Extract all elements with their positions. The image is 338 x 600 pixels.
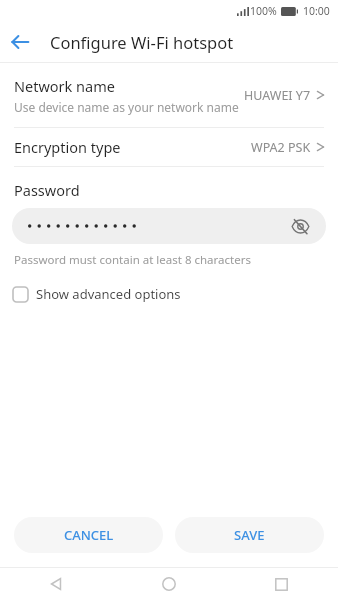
staticText: Network name [14,76,115,96]
staticText: SAVE [234,526,265,544]
staticText: Password [14,180,80,200]
button[interactable]: Network name [0,63,338,127]
button[interactable]: Show password [286,212,314,240]
button[interactable]: CANCEL [14,517,163,553]
staticText: WPA2 PSK [251,139,311,156]
staticText: 100% [250,4,277,18]
staticText: Configure Wi-Fi hotspot [50,31,234,53]
staticText: Encryption type [14,137,251,157]
staticText: Password must contain at least 8 charact… [14,252,251,268]
button[interactable]: SAVE [175,517,324,553]
button[interactable]: Home [112,568,225,600]
button[interactable]: Show advanced options [12,281,189,307]
staticText: HUAWEI Y7 [244,87,311,104]
button[interactable]: Encryption type [0,128,338,166]
button[interactable]: Back [0,568,112,600]
staticText: 10:00 [303,4,330,18]
staticText: CANCEL [64,526,114,544]
button[interactable]: Back [0,22,40,62]
button[interactable]: Recent apps [225,568,338,600]
staticText: Use device name as your network name [14,99,239,115]
staticText: Show advanced options [36,285,181,303]
button[interactable]: Show password [12,208,326,244]
